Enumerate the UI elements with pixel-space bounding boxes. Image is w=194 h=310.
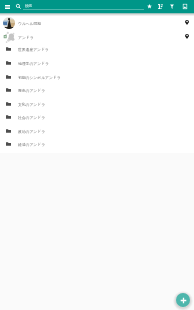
button[interactable]: 政治のアンドラ [0,124,194,138]
staticText: 検索 [25,4,33,9]
button[interactable]: 経済のアンドラ [0,137,194,151]
button[interactable]: ウルヘル同期 [0,16,194,30]
button[interactable]: 歴史のアンドラ [0,83,194,97]
staticText: 地理学のアンドラ [18,61,49,66]
button[interactable]: Library [179,0,190,13]
staticText: 歴史のアンドラ [18,88,46,93]
button[interactable]: Pin location [182,16,192,30]
button[interactable]: 初期のシンボルアンドラ [0,70,194,84]
button[interactable]: Starred [144,0,155,13]
button[interactable]: Search [13,0,23,13]
button[interactable]: 文化のアンドラ [0,97,194,111]
button[interactable]: Add [176,293,190,307]
staticText: 初期のシンボルアンドラ [18,75,61,80]
staticText: 経済のアンドラ [18,142,46,147]
button[interactable]: アンドラ [0,30,194,44]
button[interactable]: 地理学のアンドラ [0,56,194,70]
button[interactable]: Filter [166,0,177,13]
staticText: 政治のアンドラ [18,129,46,134]
button[interactable]: Pin location [182,30,192,44]
button[interactable]: 社会のアンドラ [0,110,194,124]
staticText: 社会のアンドラ [18,115,46,120]
button[interactable]: 世界遺産アンドラ [0,42,194,56]
button[interactable]: Sort [155,0,166,13]
button[interactable]: Menu [2,0,12,13]
staticText: 世界遺産アンドラ [18,47,49,52]
staticText: ウルヘル同期 [18,21,42,26]
staticText: 文化のアンドラ [18,102,46,107]
staticText: アンドラ [18,35,34,40]
